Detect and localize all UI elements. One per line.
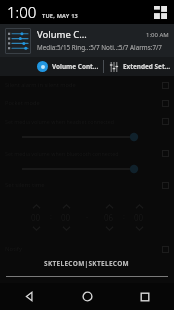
button[interactable]: Volume Cont... bbox=[37, 57, 103, 76]
staticText: Volume Control Ex bbox=[37, 28, 91, 41]
staticText: 00 bbox=[134, 212, 144, 223]
button[interactable]: Back bbox=[0, 283, 58, 310]
button[interactable]: Recent apps bbox=[116, 283, 174, 310]
staticText: 00 bbox=[31, 212, 41, 223]
button[interactable]: Home bbox=[58, 283, 116, 310]
button[interactable]: Volume Control Ex bbox=[0, 24, 174, 57]
staticText: 06 bbox=[104, 212, 114, 223]
staticText: Volume Cont... bbox=[52, 62, 99, 71]
button[interactable]: Extended Set... bbox=[104, 57, 174, 76]
button[interactable]: Quick settings bbox=[154, 6, 167, 19]
staticText: 1:00 bbox=[7, 2, 37, 22]
staticText: TUE, MAY 13 bbox=[42, 12, 79, 20]
staticText: 1:00 AM bbox=[146, 31, 169, 39]
staticText: Extended Set... bbox=[123, 62, 171, 71]
staticText: Media:5/15 Ring..:5/7 Noti..:5/7 Alarms:… bbox=[37, 43, 162, 52]
staticText: SKTELECOM|SKTELECOM bbox=[44, 259, 130, 268]
staticText: 00 bbox=[61, 212, 71, 223]
